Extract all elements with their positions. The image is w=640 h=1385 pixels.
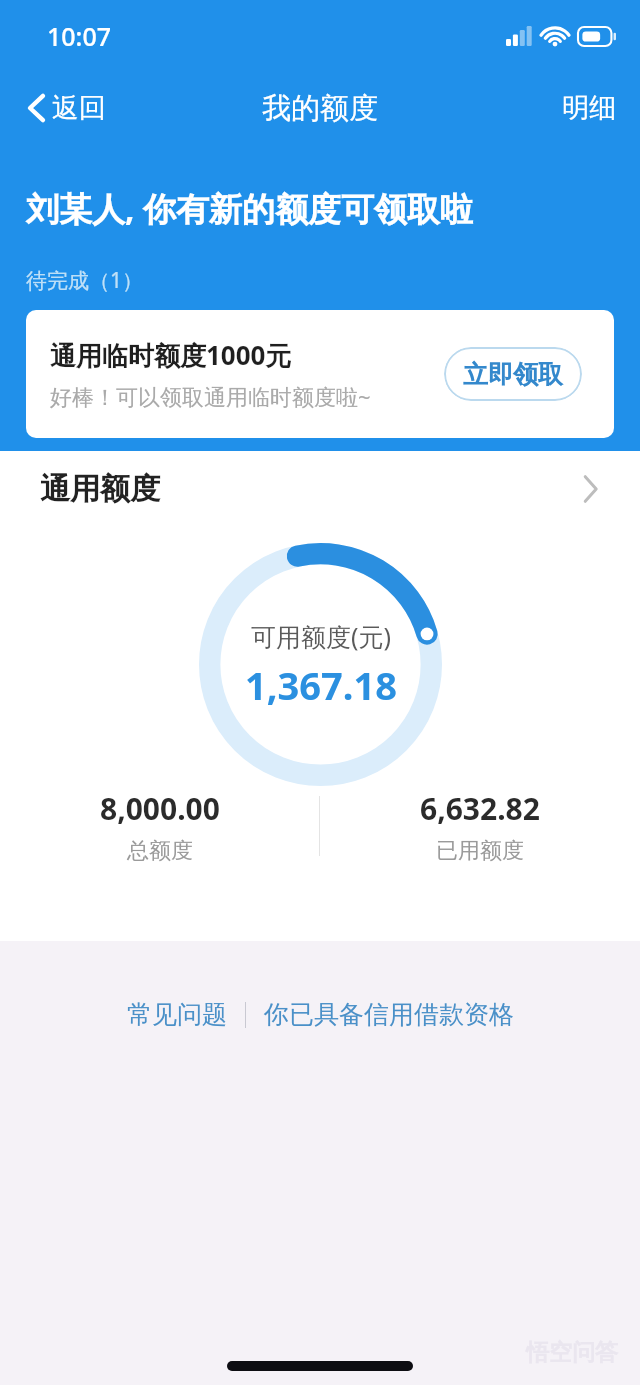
staticText: 通用额度 [40,470,160,508]
button[interactable]: 明细 [538,83,640,133]
button[interactable]: 立即领取 [444,347,582,401]
staticText: 好棒！可以领取通用临时额度啦~ [50,381,371,411]
staticText: 1,367.18 [245,659,397,711]
staticText: 立即领取 [463,359,563,390]
staticText: 悟空问答 [526,1338,618,1367]
staticText: 8,000.00 [100,788,220,829]
staticText: 10:07 [47,19,112,53]
staticText: 可用额度(元) [251,619,392,653]
button[interactable]: 通用临时额度1000元 [26,310,614,438]
staticText: 6,632.82 [420,788,540,829]
button[interactable]: 常见问题 [123,995,231,1034]
button[interactable]: 返回 [18,85,116,131]
staticText: 已用额度 [436,837,524,865]
staticText: 返回 [52,91,106,125]
staticText: 我的额度 [262,90,378,127]
staticText: 刘某人, 你有新的额度可领取啦 [26,186,473,231]
staticText: 待完成（1） [26,266,144,295]
staticText: 通用临时额度1000元 [50,337,292,373]
staticText: 总额度 [127,837,193,865]
button[interactable]: 你已具备信用借款资格 [260,995,518,1034]
button[interactable]: 通用额度 [0,451,640,527]
